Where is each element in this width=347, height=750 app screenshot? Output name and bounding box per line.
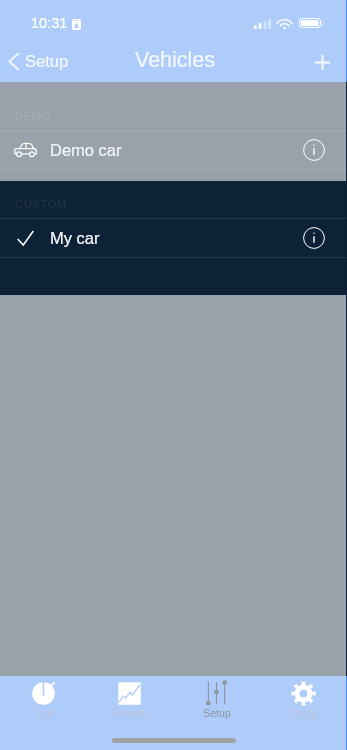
button[interactable]: My car (0, 219, 347, 257)
staticText: Test (33, 707, 53, 719)
button[interactable]: Config (260, 676, 347, 750)
staticText: Setup (25, 52, 69, 70)
staticText: CUSTOM (15, 198, 67, 211)
button[interactable]: Add vehicle (307, 47, 337, 77)
staticText: Vehicles (135, 48, 216, 72)
button[interactable]: More info (303, 227, 325, 249)
staticText: Demo car (50, 141, 122, 159)
staticText: DEMO (15, 110, 51, 123)
button[interactable]: Demo car (0, 131, 347, 169)
button[interactable]: More info (303, 139, 325, 161)
button[interactable]: Results (86, 676, 173, 750)
staticText: Config (288, 707, 319, 719)
staticText: My car (50, 229, 100, 247)
staticText: Results (112, 707, 148, 719)
staticText: 10:31 (31, 15, 68, 31)
staticText: Setup (203, 707, 231, 719)
button[interactable]: Test (0, 676, 86, 750)
button[interactable]: Setup (4, 49, 77, 73)
button[interactable]: Setup (173, 676, 260, 750)
